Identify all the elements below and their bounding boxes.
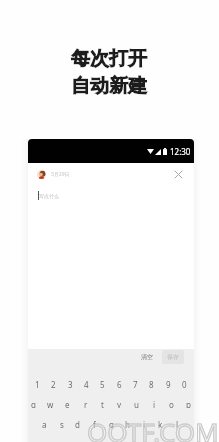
button[interactable]: 5 — [98, 379, 107, 388]
staticText: 12:30 — [170, 146, 191, 157]
staticText: p — [186, 399, 191, 408]
button[interactable]: p — [184, 399, 193, 408]
staticText: 1 — [35, 379, 40, 388]
button[interactable]: s — [57, 419, 66, 428]
staticText: 0 — [182, 379, 187, 388]
staticText: 9 — [166, 379, 171, 388]
staticText: 2 — [51, 379, 56, 388]
staticText: a — [42, 419, 47, 428]
staticText: q — [31, 399, 36, 408]
staticText: 8 — [149, 379, 154, 388]
staticText: y — [117, 399, 122, 408]
button[interactable]: r — [81, 399, 90, 408]
button[interactable]: k — [156, 419, 165, 428]
button[interactable]: h — [123, 419, 132, 428]
button[interactable]: q — [29, 399, 38, 408]
button[interactable]: w — [46, 399, 55, 408]
staticText: g — [109, 419, 114, 428]
staticText: 3 — [68, 379, 73, 388]
button[interactable]: o — [167, 399, 176, 408]
staticText: f — [93, 419, 96, 428]
button[interactable]: f — [90, 419, 99, 428]
staticText: 自动新建 — [71, 74, 147, 98]
staticText: d — [75, 419, 80, 428]
button[interactable]: u — [132, 399, 141, 408]
button[interactable]: 保存 — [162, 350, 184, 364]
staticText: 3月29日 — [51, 171, 70, 178]
staticText: l — [176, 419, 179, 428]
button[interactable]: l — [173, 419, 182, 428]
button[interactable]: 3 — [66, 379, 75, 388]
staticText: j — [143, 419, 146, 428]
staticText: 清空 — [141, 353, 153, 361]
button[interactable]: i — [150, 399, 159, 408]
staticText: 5 — [100, 379, 105, 388]
button[interactable]: t — [98, 399, 107, 408]
button[interactable]: 清空 — [139, 351, 155, 363]
staticText: w — [47, 399, 54, 408]
staticText: 4 — [84, 379, 89, 388]
button[interactable]: Close — [171, 167, 185, 181]
button[interactable]: 9 — [164, 379, 173, 388]
staticText: i — [153, 399, 156, 408]
button[interactable]: a — [40, 419, 49, 428]
staticText: QQTF.COM — [87, 414, 219, 442]
staticText: 写点什么 — [39, 193, 59, 199]
staticText: o — [169, 399, 174, 408]
staticText: e — [65, 399, 70, 408]
button[interactable]: 6 — [115, 379, 124, 388]
staticText: s — [60, 419, 64, 428]
staticText: 7 — [133, 379, 138, 388]
staticText: 6 — [117, 379, 122, 388]
staticText: h — [125, 419, 130, 428]
staticText: t — [101, 399, 104, 408]
button[interactable]: 4 — [82, 379, 91, 388]
button[interactable]: 1 — [33, 379, 42, 388]
button[interactable]: 3月29日 — [37, 170, 70, 179]
button[interactable]: 写点什么 — [38, 191, 194, 349]
staticText: 保存 — [167, 353, 179, 361]
button[interactable]: 7 — [131, 379, 140, 388]
staticText: k — [158, 419, 163, 428]
button[interactable]: 2 — [49, 379, 58, 388]
button[interactable]: y — [115, 399, 124, 408]
button[interactable]: e — [63, 399, 72, 408]
button[interactable]: 0 — [180, 379, 189, 388]
button[interactable]: g — [107, 419, 116, 428]
staticText: u — [134, 399, 139, 408]
staticText: 每次打开 — [71, 47, 147, 71]
button[interactable]: d — [73, 419, 82, 428]
button[interactable]: 8 — [147, 379, 156, 388]
button[interactable]: j — [140, 419, 149, 428]
staticText: r — [84, 399, 88, 408]
